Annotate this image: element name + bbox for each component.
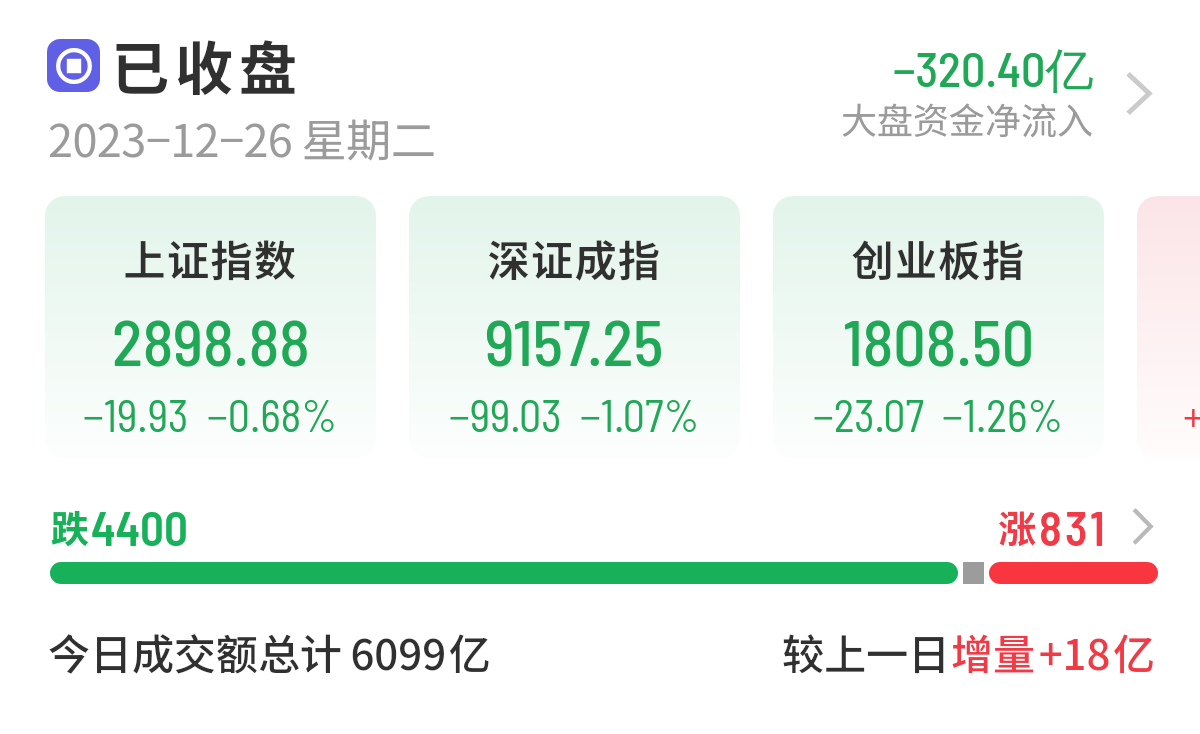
button[interactable]: −320.40亿 — [820, 39, 1160, 149]
staticText: −1.07% — [580, 388, 700, 441]
staticText: 831 — [1039, 499, 1108, 555]
other: View capital flow details — [1128, 73, 1152, 114]
staticText: 深证成指 — [487, 227, 662, 288]
staticText: 2023−12−26 星期二 — [48, 105, 436, 170]
staticText: −0.68% — [207, 388, 338, 441]
staticText: +11.52 — [1183, 388, 1200, 441]
staticText: 增量 — [951, 621, 1036, 682]
staticText: 跌 — [51, 499, 90, 554]
staticText: 4400 — [91, 499, 188, 555]
button[interactable]: 跌 — [40, 492, 1160, 554]
button[interactable]: 上证指数 — [45, 196, 376, 458]
button[interactable]: Market status — [47, 39, 100, 92]
staticText: 已收盘 — [111, 23, 304, 107]
staticText: −99.03 — [449, 388, 562, 441]
staticText: 涨 — [998, 499, 1037, 554]
button[interactable]: 深证成指 — [409, 196, 740, 458]
staticText: 较上一日 — [782, 621, 951, 682]
staticText: −23.07 — [813, 388, 924, 441]
staticText: 上证指数 — [123, 227, 298, 288]
other: View rise and fall details — [1134, 509, 1153, 544]
staticText: 创业板指 — [851, 227, 1026, 288]
staticText: −1.26% — [942, 388, 1064, 441]
button[interactable]: 创业板指 — [773, 196, 1104, 458]
button[interactable]: 北证50 — [1137, 196, 1200, 458]
staticText: +18 亿 — [1036, 621, 1156, 682]
staticText: 1808.50 — [843, 302, 1035, 379]
staticText: 2898.88 — [112, 302, 310, 379]
staticText: 9157.25 — [485, 302, 664, 379]
staticText: 今日成交额总计 6099 亿 — [48, 621, 491, 682]
staticText: 大盘资金净流入 — [841, 92, 1094, 140]
staticText: −19.93 — [83, 388, 189, 441]
staticText: −320.40亿 — [893, 39, 1094, 101]
